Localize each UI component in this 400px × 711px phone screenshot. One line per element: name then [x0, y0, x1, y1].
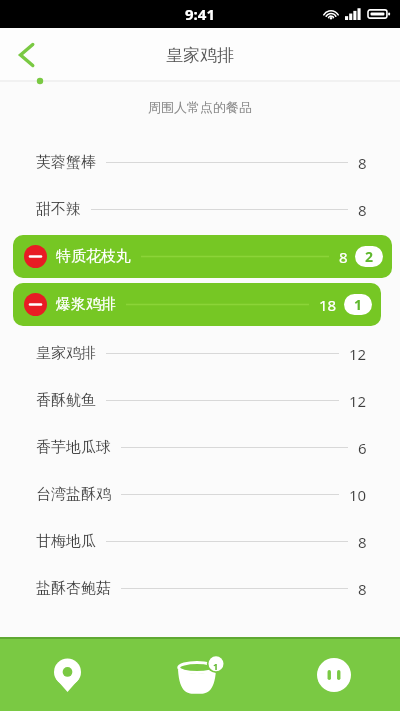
staticText: 8 — [358, 200, 367, 220]
button[interactable]: 香酥鱿鱼 — [0, 377, 400, 424]
staticText: 8 — [358, 532, 367, 552]
staticText: 特质花枝丸 — [56, 247, 131, 266]
button[interactable]: Cart — [134, 639, 267, 711]
button[interactable]: 芙蓉蟹棒 — [0, 139, 400, 186]
button[interactable]: Remove 爆浆鸡排 — [13, 283, 381, 326]
staticText: 香芋地瓜球 — [36, 438, 111, 457]
staticText: 8 — [358, 153, 367, 173]
staticText: 周围人常点的餐品 — [0, 99, 400, 115]
staticText: 9:41 — [185, 4, 215, 24]
staticText: 盐酥杏鲍菇 — [36, 579, 111, 598]
staticText: 皇家鸡排 — [36, 344, 96, 363]
staticText: 1 — [354, 295, 363, 314]
staticText: 爆浆鸡排 — [56, 295, 116, 314]
staticText: 台湾盐酥鸡 — [36, 485, 111, 504]
button[interactable]: Location — [0, 639, 134, 711]
staticText: 12 — [349, 344, 367, 364]
button[interactable]: 盐酥杏鲍菇 — [0, 565, 400, 612]
button[interactable]: Remove 爆浆鸡排 — [24, 293, 47, 316]
staticText: 6 — [358, 438, 367, 458]
button[interactable]: 甘梅地瓜 — [0, 518, 400, 565]
staticText: 8 — [358, 579, 367, 599]
staticText: 甜不辣 — [36, 200, 81, 219]
staticText: 香酥鱿鱼 — [36, 391, 96, 410]
button[interactable]: Pause — [267, 639, 400, 711]
staticText: 甘梅地瓜 — [36, 532, 96, 551]
button[interactable]: Remove 特质花枝丸 — [13, 235, 392, 278]
staticText: 1 — [213, 660, 219, 672]
staticText: 皇家鸡排 — [166, 45, 234, 66]
button[interactable]: 皇家鸡排 — [0, 330, 400, 377]
staticText: 12 — [349, 391, 367, 411]
staticText: 18 — [319, 295, 337, 315]
staticText: 2 — [365, 247, 374, 266]
button[interactable]: 香芋地瓜球 — [0, 424, 400, 471]
button[interactable]: Back — [0, 28, 54, 82]
staticText: 10 — [349, 485, 367, 505]
button[interactable]: 甜不辣 — [0, 186, 400, 233]
staticText: 芙蓉蟹棒 — [36, 153, 96, 172]
button[interactable]: 台湾盐酥鸡 — [0, 471, 400, 518]
button[interactable]: Remove 特质花枝丸 — [24, 245, 47, 268]
staticText: 8 — [339, 247, 348, 267]
